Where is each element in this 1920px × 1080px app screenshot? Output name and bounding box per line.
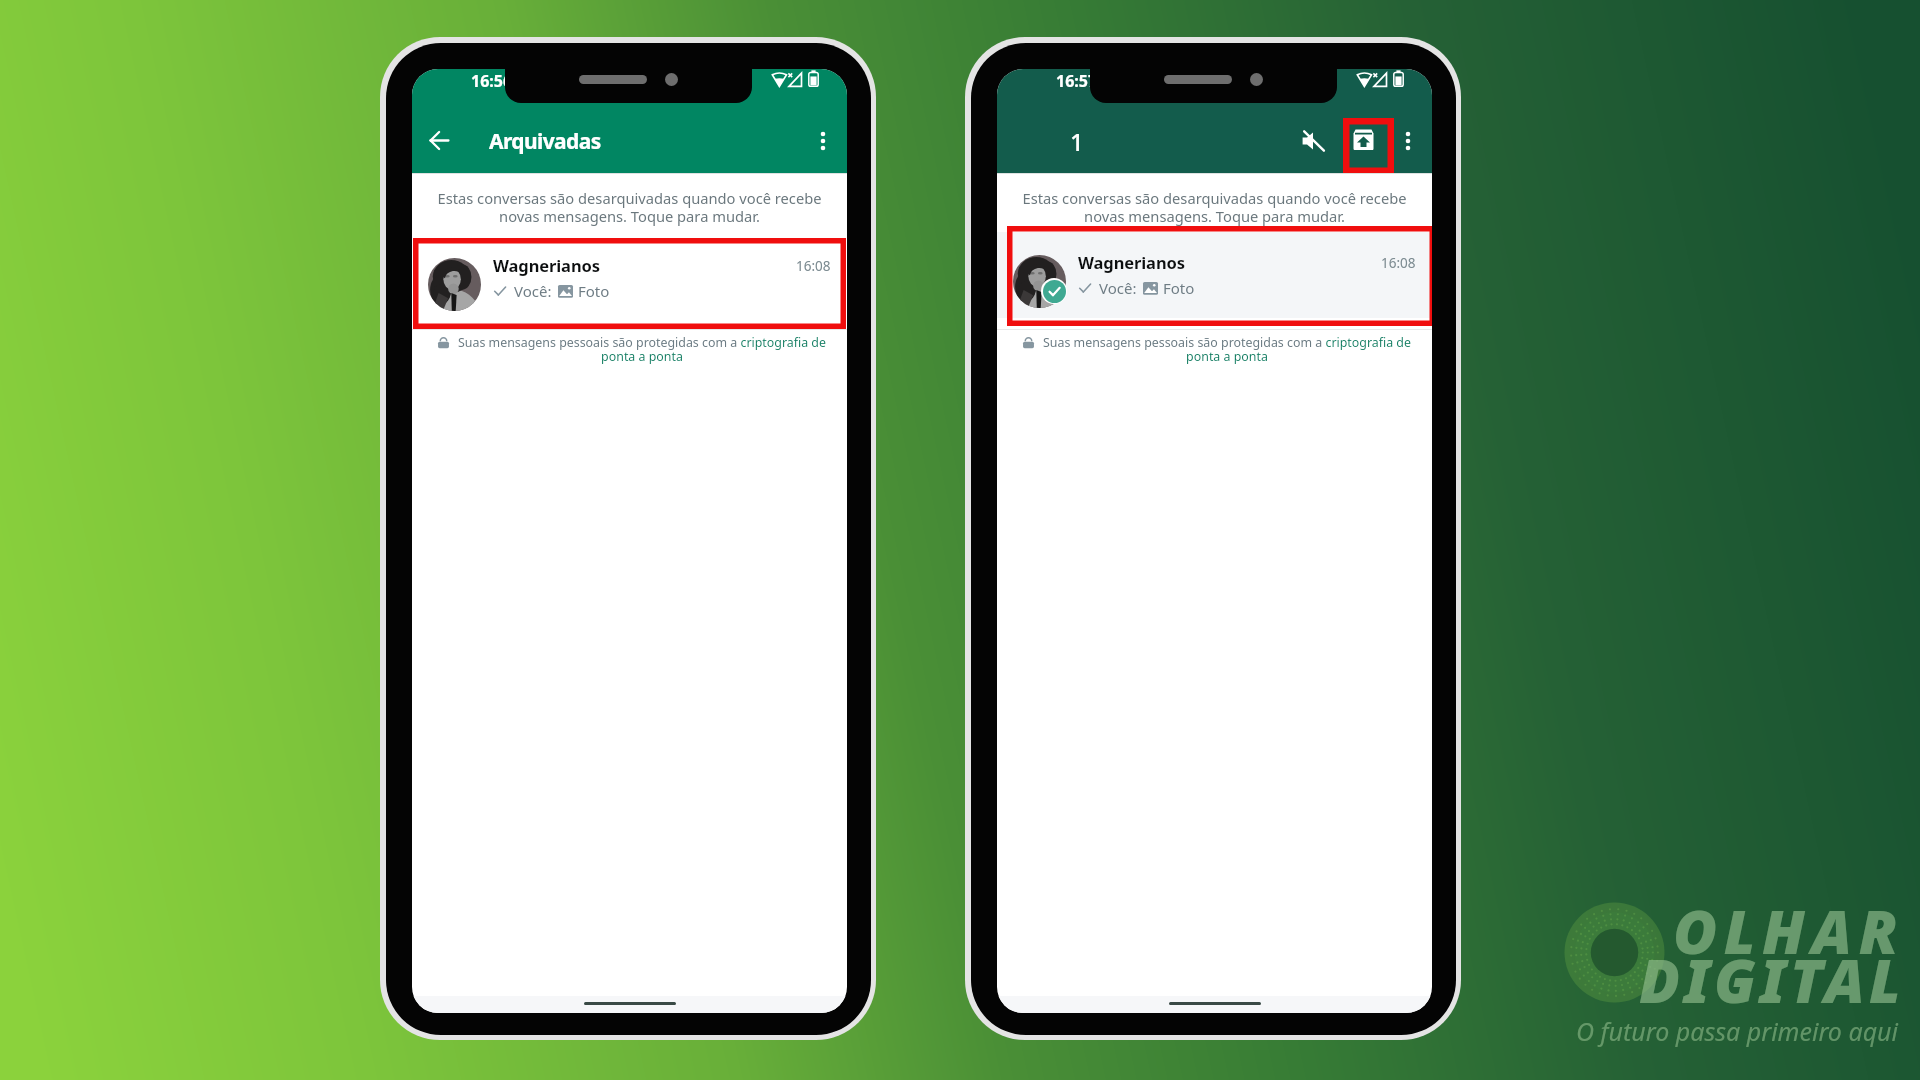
button[interactable]: Estas conversas são desarquivadas quando… bbox=[412, 174, 847, 243]
button[interactable]: Estas conversas são desarquivadas quando… bbox=[997, 174, 1432, 243]
button[interactable]: Suas mensagens pessoais são protegidas c… bbox=[997, 330, 1432, 365]
staticText: O futuro passa primeiro aqui bbox=[1576, 1014, 1899, 1048]
staticText: Foto bbox=[578, 281, 610, 301]
staticText: OLHAR bbox=[1673, 890, 1905, 972]
staticText: Estas conversas são desarquivadas quando… bbox=[1003, 188, 1426, 226]
staticText: Suas mensagens pessoais são protegidas c… bbox=[1041, 334, 1413, 365]
button[interactable]: Suas mensagens pessoais são protegidas c… bbox=[412, 330, 847, 365]
button[interactable]: Mais opções bbox=[1386, 119, 1430, 163]
staticText: 16:08 bbox=[1381, 254, 1416, 272]
button[interactable]: Wagnerianos bbox=[997, 243, 1432, 330]
button[interactable]: Mais opções bbox=[801, 119, 845, 163]
staticText: Foto bbox=[1163, 278, 1195, 298]
staticText: Wagnerianos bbox=[493, 254, 600, 276]
staticText: Arquivadas bbox=[489, 127, 601, 156]
staticText: Suas mensagens pessoais são protegidas c… bbox=[456, 334, 828, 365]
staticText: DIGITAL bbox=[1639, 939, 1905, 1021]
button[interactable]: Silenciar bbox=[1291, 119, 1335, 163]
staticText: 16:56 bbox=[471, 70, 513, 92]
button[interactable]: Wagnerianos bbox=[412, 243, 847, 330]
staticText: Você: bbox=[514, 281, 552, 301]
button[interactable]: Desarquivar bbox=[1341, 117, 1385, 161]
staticText: 16:57 bbox=[1056, 70, 1098, 92]
staticText: 1 bbox=[1070, 125, 1084, 158]
staticText: Estas conversas são desarquivadas quando… bbox=[418, 188, 841, 226]
button[interactable]: Voltar bbox=[415, 116, 463, 164]
staticText: Você: bbox=[1099, 278, 1137, 298]
staticText: Wagnerianos bbox=[1078, 251, 1185, 273]
staticText: 16:08 bbox=[796, 257, 831, 275]
